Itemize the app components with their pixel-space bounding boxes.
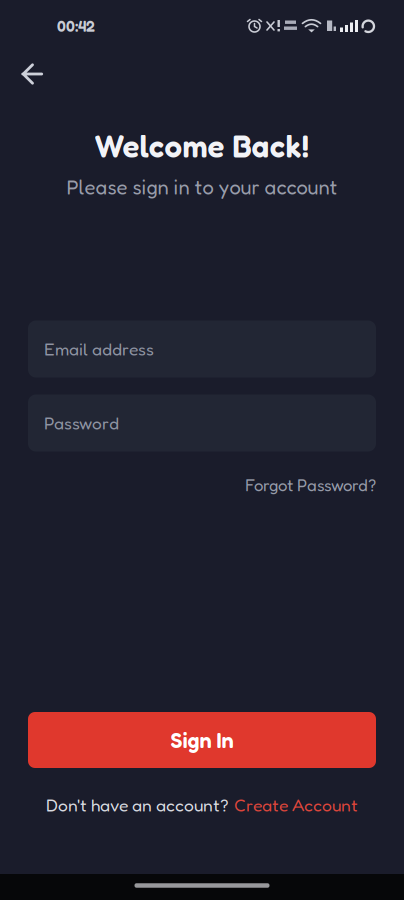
button[interactable]: Forgot Password? — [245, 475, 376, 495]
staticText: Email address — [44, 338, 154, 359]
staticText: 00:42 — [57, 17, 95, 35]
staticText: Don't have an account? — [46, 794, 229, 815]
staticText: Forgot Password? — [245, 475, 376, 495]
staticText: Password — [44, 412, 119, 433]
staticText: Sign In — [170, 727, 233, 753]
staticText: Welcome Back! — [94, 127, 309, 165]
button[interactable]: Sign In — [28, 712, 376, 768]
button[interactable]: Back — [10, 52, 54, 96]
staticText: Create Account — [234, 794, 358, 815]
button[interactable]: Create Account — [234, 794, 358, 815]
staticText: Please sign in to your account — [66, 175, 337, 199]
